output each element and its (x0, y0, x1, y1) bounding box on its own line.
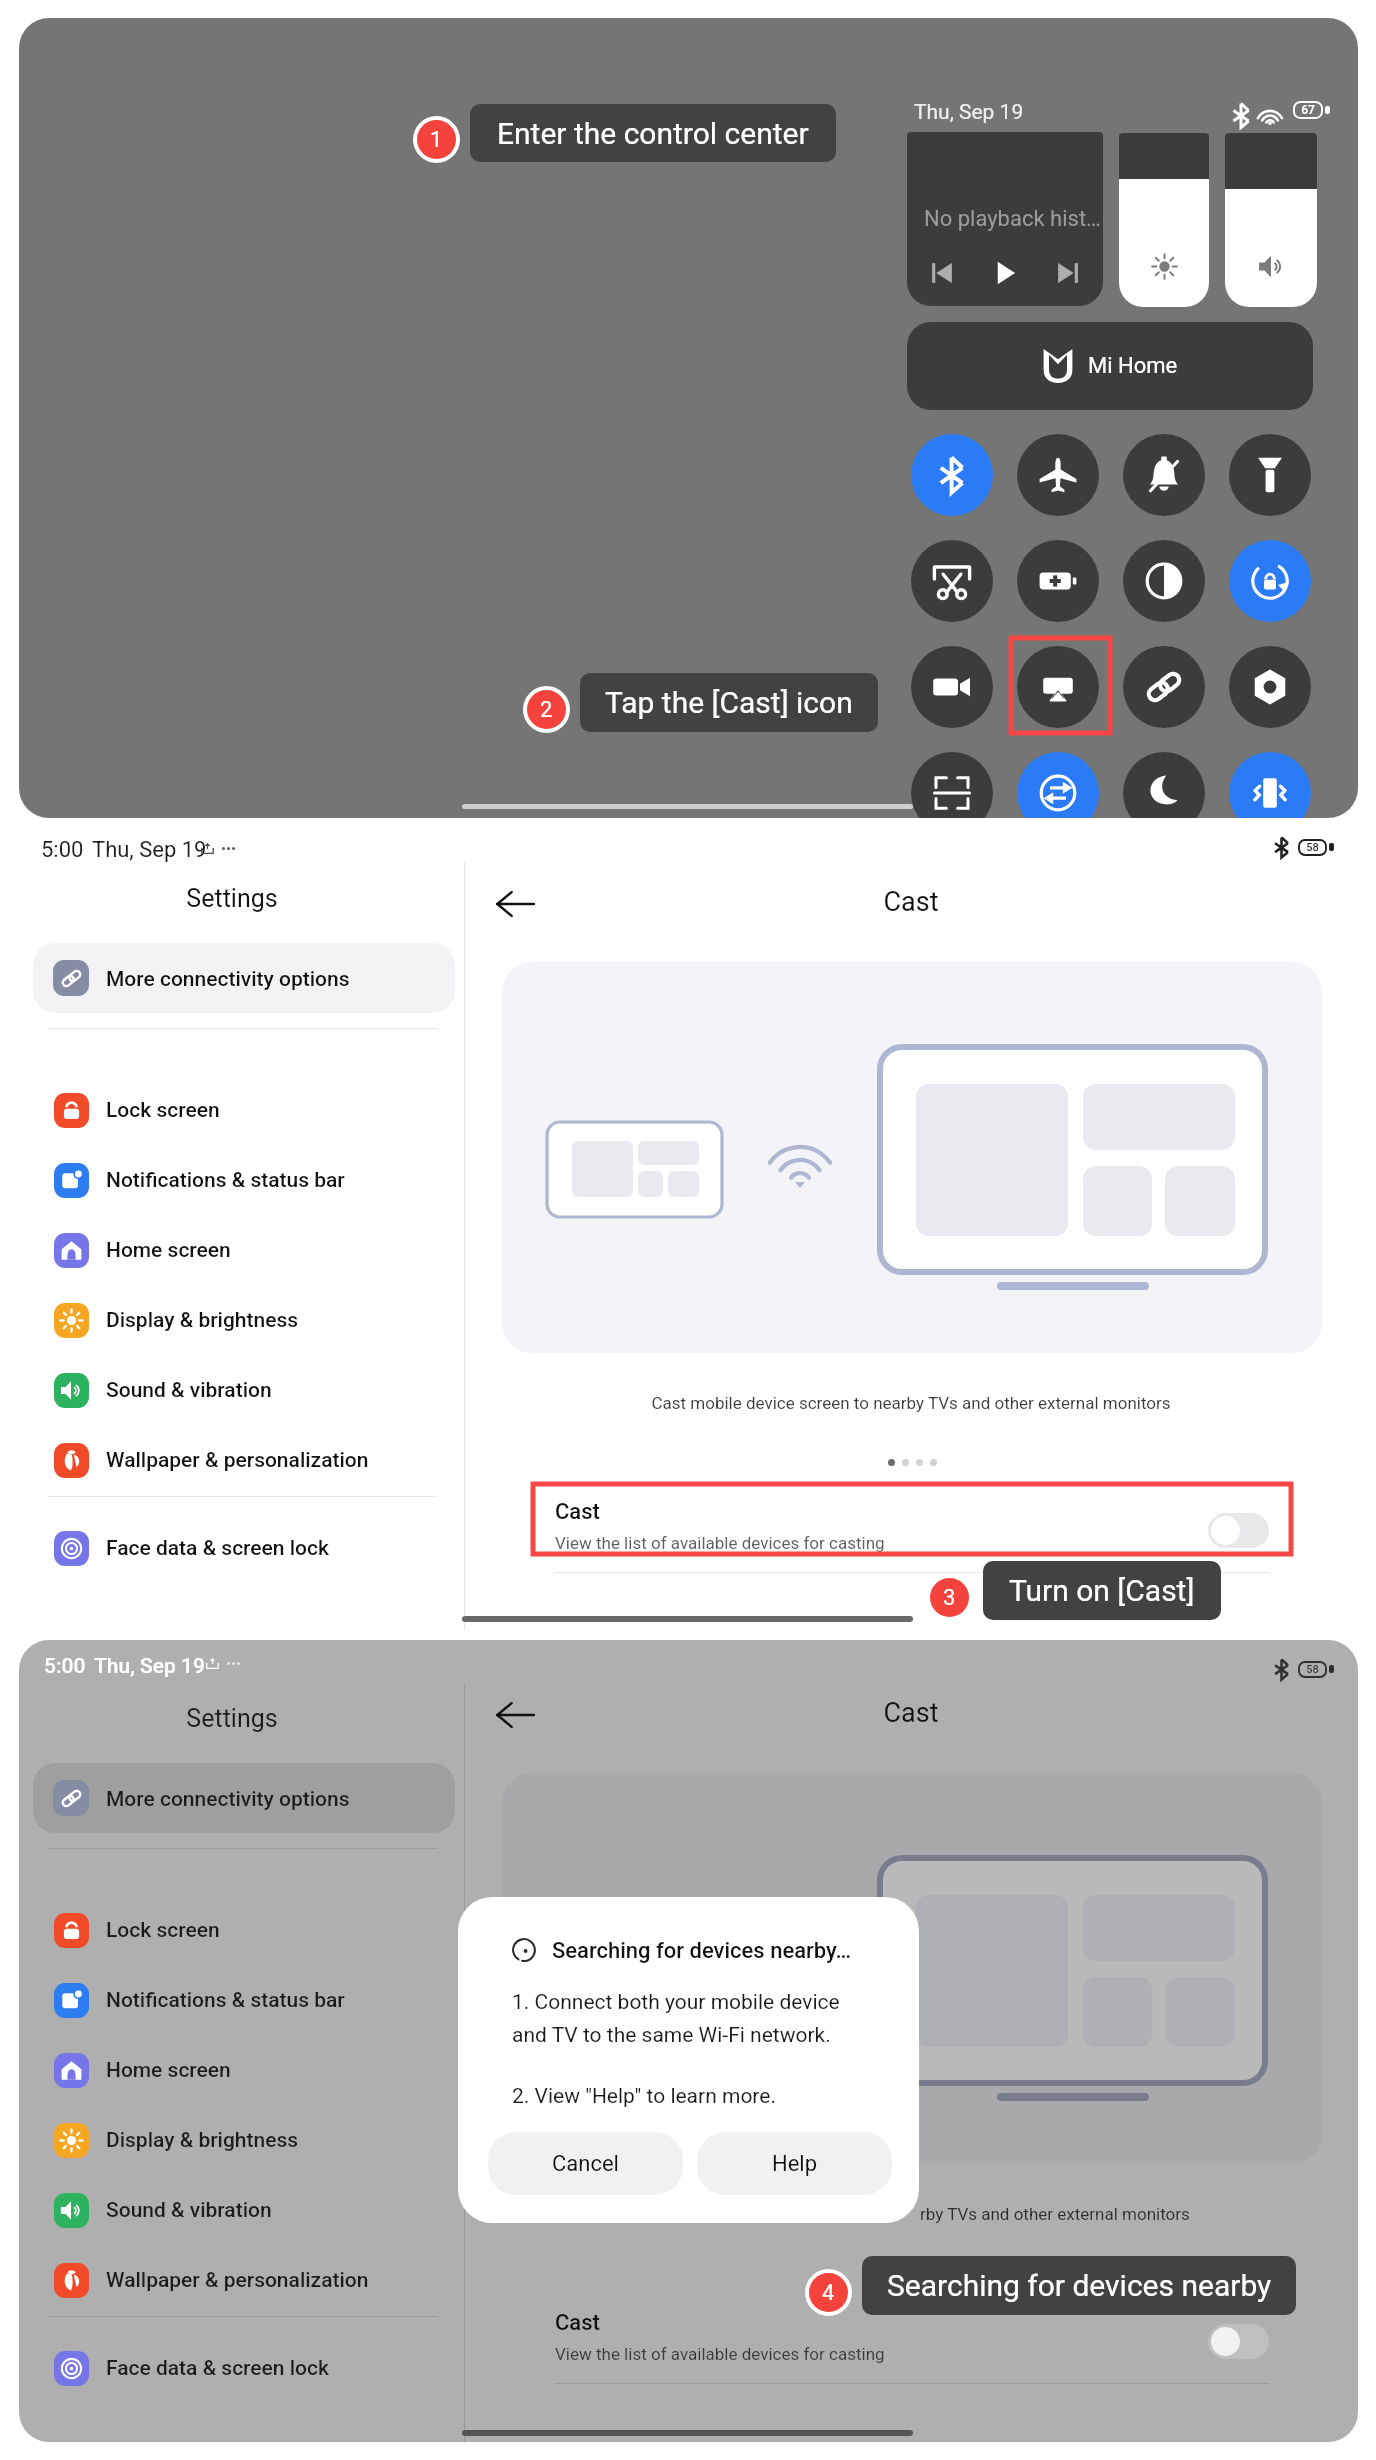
staticText: No playback hist… (924, 206, 1101, 232)
staticText: Lock screen (106, 1918, 220, 1943)
button[interactable]: Back (494, 1697, 536, 1733)
staticText: 2. View "Help" to learn more. (512, 2084, 776, 2109)
staticText: 58 (1298, 1663, 1327, 1676)
button[interactable]: Airplane mode (1017, 434, 1099, 516)
staticText: 1 (430, 127, 443, 153)
button[interactable]: Back (494, 886, 536, 922)
button[interactable]: Face data & screen lock (33, 1513, 455, 1583)
staticText: Home screen (106, 2058, 231, 2083)
button[interactable]: Silent (1123, 434, 1205, 516)
button[interactable]: Display & brightness (33, 1285, 455, 1355)
button[interactable]: Flashlight (1229, 434, 1311, 516)
button[interactable]: Do not disturb (1123, 752, 1205, 818)
button[interactable]: Home screen (33, 2035, 455, 2105)
button[interactable]: Bluetooth (911, 434, 993, 516)
button[interactable]: Battery saver (1017, 540, 1099, 622)
staticText: Thu, Sep 19 (92, 837, 207, 863)
staticText: 5:00 (41, 837, 84, 863)
button[interactable]: Scan (911, 752, 993, 818)
button[interactable]: Rotation lock (1229, 540, 1311, 622)
button[interactable]: Cast toggle (1208, 2324, 1269, 2359)
button[interactable]: Help (697, 2132, 892, 2195)
staticText: Wallpaper & personalization (106, 2268, 369, 2293)
staticText: Thu, Sep 19 (914, 100, 1024, 125)
button[interactable]: Screenshot (911, 540, 993, 622)
staticText: 5:00 (44, 1654, 86, 1679)
staticText: Notifications & status bar (106, 1168, 345, 1193)
button[interactable]: Lock screen (33, 1895, 455, 1965)
staticText: Wallpaper & personalization (106, 1448, 369, 1473)
staticText: Help (772, 2151, 818, 2177)
button[interactable]: More connectivity options (33, 1763, 455, 1833)
staticText: Cast (464, 1697, 1358, 1729)
button[interactable]: Wallpaper & personalization (33, 1425, 455, 1495)
staticText: Display & brightness (106, 1308, 299, 1333)
staticText: Settings (19, 1704, 464, 1733)
staticText: 4 (822, 2280, 835, 2306)
staticText: Home screen (106, 1238, 231, 1263)
staticText: Tap the [Cast] icon (605, 685, 853, 720)
staticText: Notifications & status bar (106, 1988, 345, 2013)
staticText: 1. Connect both your mobile device (512, 1990, 840, 2015)
staticText: 58 (1298, 841, 1327, 854)
staticText: Cast (464, 886, 1358, 918)
button[interactable]: Sound & vibration (33, 2175, 455, 2245)
staticText: Searching for devices nearby (887, 2268, 1272, 2303)
staticText: 3 (943, 1585, 956, 1611)
button[interactable]: Cancel (488, 2132, 683, 2195)
button[interactable]: Screen record (911, 646, 993, 728)
staticText: View the list of available devices for c… (555, 1533, 885, 1553)
staticText: Lock screen (106, 1098, 220, 1123)
staticText: More connectivity options (106, 967, 350, 992)
staticText: Cancel (552, 2151, 619, 2177)
button[interactable]: Sync (1017, 752, 1099, 818)
staticText: 2 (540, 697, 553, 723)
staticText: Searching for devices nearby… (552, 1938, 852, 1964)
button[interactable]: More connectivity options (33, 943, 455, 1013)
staticText: Sound & vibration (106, 2198, 272, 2223)
button[interactable]: Dark mode (1123, 540, 1205, 622)
button[interactable]: Face data & screen lock (33, 2333, 455, 2403)
button[interactable]: Lock screen (33, 1075, 455, 1145)
button[interactable]: Home screen (33, 1215, 455, 1285)
button[interactable]: Display & brightness (33, 2105, 455, 2175)
staticText: Cast (555, 2310, 600, 2336)
staticText: Sound & vibration (106, 1378, 272, 1403)
staticText: and TV to the same Wi-Fi network. (512, 2023, 831, 2048)
staticText: Display & brightness (106, 2128, 299, 2153)
button[interactable]: Volume (1225, 133, 1317, 307)
staticText: Thu, Sep 19 (94, 1654, 205, 1679)
button[interactable]: Notifications & status bar (33, 1145, 455, 1215)
staticText: Face data & screen lock (106, 2356, 329, 2381)
staticText: Face data & screen lock (106, 1536, 329, 1561)
button[interactable]: Sound & vibration (33, 1355, 455, 1425)
button[interactable]: No playback hist… (907, 132, 1103, 306)
staticText: Cast (555, 1499, 600, 1525)
staticText: rby TVs and other external monitors (920, 2204, 1190, 2224)
button[interactable]: Brightness (1119, 133, 1209, 307)
button[interactable]: Notifications & status bar (33, 1965, 455, 2035)
button[interactable]: Settings (1229, 646, 1311, 728)
button[interactable]: Mi Home (907, 322, 1313, 410)
staticText: Turn on [Cast] (1009, 1573, 1195, 1608)
staticText: View the list of available devices for c… (555, 2344, 885, 2364)
button[interactable]: Wallpaper & personalization (33, 2245, 455, 2315)
staticText: Settings (0, 884, 464, 913)
button[interactable]: Vibrate (1229, 752, 1311, 818)
staticText: More connectivity options (106, 1787, 350, 1812)
button[interactable]: Cast (1017, 646, 1099, 728)
staticText: Enter the control center (497, 116, 809, 151)
staticText: Mi Home (1088, 353, 1178, 379)
button[interactable]: Link (1123, 646, 1205, 728)
button[interactable]: Cast toggle (1208, 1513, 1269, 1548)
staticText: 67 (1293, 103, 1323, 117)
staticText: Cast mobile device screen to nearby TVs … (464, 1393, 1358, 1413)
